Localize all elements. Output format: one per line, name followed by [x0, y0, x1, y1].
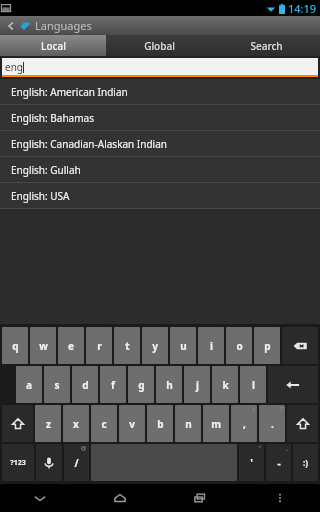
button[interactable]: u [170, 327, 196, 364]
staticText: s [54, 378, 60, 392]
button[interactable]: n [175, 405, 201, 442]
button[interactable]: English: Gullah [0, 157, 320, 183]
button[interactable]: s [44, 366, 70, 403]
button[interactable]: y [142, 327, 168, 364]
button[interactable]: Backspace [282, 327, 318, 364]
staticText: Global [144, 39, 175, 53]
button[interactable]: ! [231, 405, 257, 442]
button[interactable]: " [239, 444, 264, 481]
staticText: English: Bahamas [11, 111, 94, 125]
staticText: @ [81, 444, 87, 452]
staticText: e [68, 339, 74, 353]
button[interactable]: Search [213, 35, 320, 56]
button[interactable]: q [2, 327, 28, 364]
button[interactable]: Global [106, 35, 213, 56]
button[interactable]: Recent apps [160, 484, 240, 512]
button[interactable]: English: USA [0, 183, 320, 209]
staticText: :) [303, 457, 308, 468]
button[interactable]: p [254, 327, 280, 364]
staticText: x [73, 417, 79, 431]
staticText: Search [250, 39, 283, 53]
button[interactable]: k [212, 366, 238, 403]
button[interactable]: f [100, 366, 126, 403]
button[interactable]: Shift [2, 405, 33, 442]
button[interactable]: a [16, 366, 42, 403]
staticText: p [264, 339, 271, 353]
staticText: b [157, 417, 164, 431]
button[interactable]: Hide keyboard [0, 484, 80, 512]
staticText: Languages [35, 18, 92, 33]
staticText: eng [5, 60, 23, 74]
button[interactable]: Shift [287, 405, 318, 442]
staticText: / [74, 456, 79, 470]
button[interactable]: t [114, 327, 140, 364]
button[interactable]: e [58, 327, 84, 364]
staticText: 14:19 [288, 1, 317, 16]
staticText: _ [286, 444, 289, 452]
staticText: ? [280, 405, 283, 413]
button[interactable]: eng [2, 58, 318, 75]
button[interactable]: m [203, 405, 229, 442]
staticText: v [129, 417, 135, 431]
staticText: u [180, 339, 187, 353]
button[interactable]: h [156, 366, 182, 403]
staticText: t [125, 339, 130, 353]
staticText: " [259, 444, 262, 452]
button[interactable]: j [184, 366, 210, 403]
staticText: f [111, 378, 115, 392]
button[interactable]: English: Canadian-Alaskan Indian [0, 131, 320, 157]
staticText: English: Gullah [11, 163, 81, 177]
button[interactable]: More options [240, 484, 320, 512]
button[interactable]: g [128, 366, 154, 403]
button[interactable]: v [119, 405, 145, 442]
staticText: English: USA [11, 189, 70, 203]
button[interactable]: Home [80, 484, 160, 512]
staticText: i [210, 339, 213, 353]
staticText: . [271, 417, 274, 431]
button[interactable]: _ [266, 444, 291, 481]
staticText: y [152, 339, 158, 353]
staticText: Local [41, 39, 66, 53]
staticText: ! [253, 405, 255, 413]
button[interactable]: o [226, 327, 252, 364]
staticText: m [211, 417, 221, 431]
button[interactable]: z [35, 405, 61, 442]
button[interactable]: b [147, 405, 173, 442]
button[interactable]: i [198, 327, 224, 364]
button[interactable]: d [72, 366, 98, 403]
staticText: , [243, 417, 246, 431]
button[interactable]: x [63, 405, 89, 442]
staticText: r [97, 339, 102, 353]
staticText: ?123 [10, 458, 26, 468]
staticText: English: American Indian [11, 85, 128, 99]
staticText: z [46, 417, 51, 431]
staticText: - [277, 456, 281, 470]
button[interactable]: :) [293, 444, 318, 481]
staticText: o [236, 339, 243, 353]
staticText: c [101, 417, 107, 431]
staticText: w [39, 339, 48, 353]
button[interactable]: Local [0, 35, 106, 56]
staticText: k [222, 378, 229, 392]
button[interactable]: @ [64, 444, 89, 481]
button[interactable]: r [86, 327, 112, 364]
staticText: a [26, 378, 32, 392]
button[interactable]: ?123 [2, 444, 34, 481]
staticText: g [138, 378, 145, 392]
button[interactable]: Back [4, 19, 17, 32]
button[interactable]: w [30, 327, 56, 364]
staticText: q [12, 339, 19, 353]
button[interactable]: Voice input [36, 444, 62, 481]
button[interactable]: Enter [268, 366, 318, 403]
button[interactable]: ? [259, 405, 285, 442]
staticText: d [82, 378, 89, 392]
staticText: j [196, 378, 199, 392]
button[interactable]: English: American Indian [0, 79, 320, 105]
button[interactable]: English: Bahamas [0, 105, 320, 131]
button[interactable]: c [91, 405, 117, 442]
button[interactable]: l [240, 366, 266, 403]
staticText: n [185, 417, 192, 431]
staticText: ' [250, 456, 253, 470]
staticText: h [166, 378, 173, 392]
